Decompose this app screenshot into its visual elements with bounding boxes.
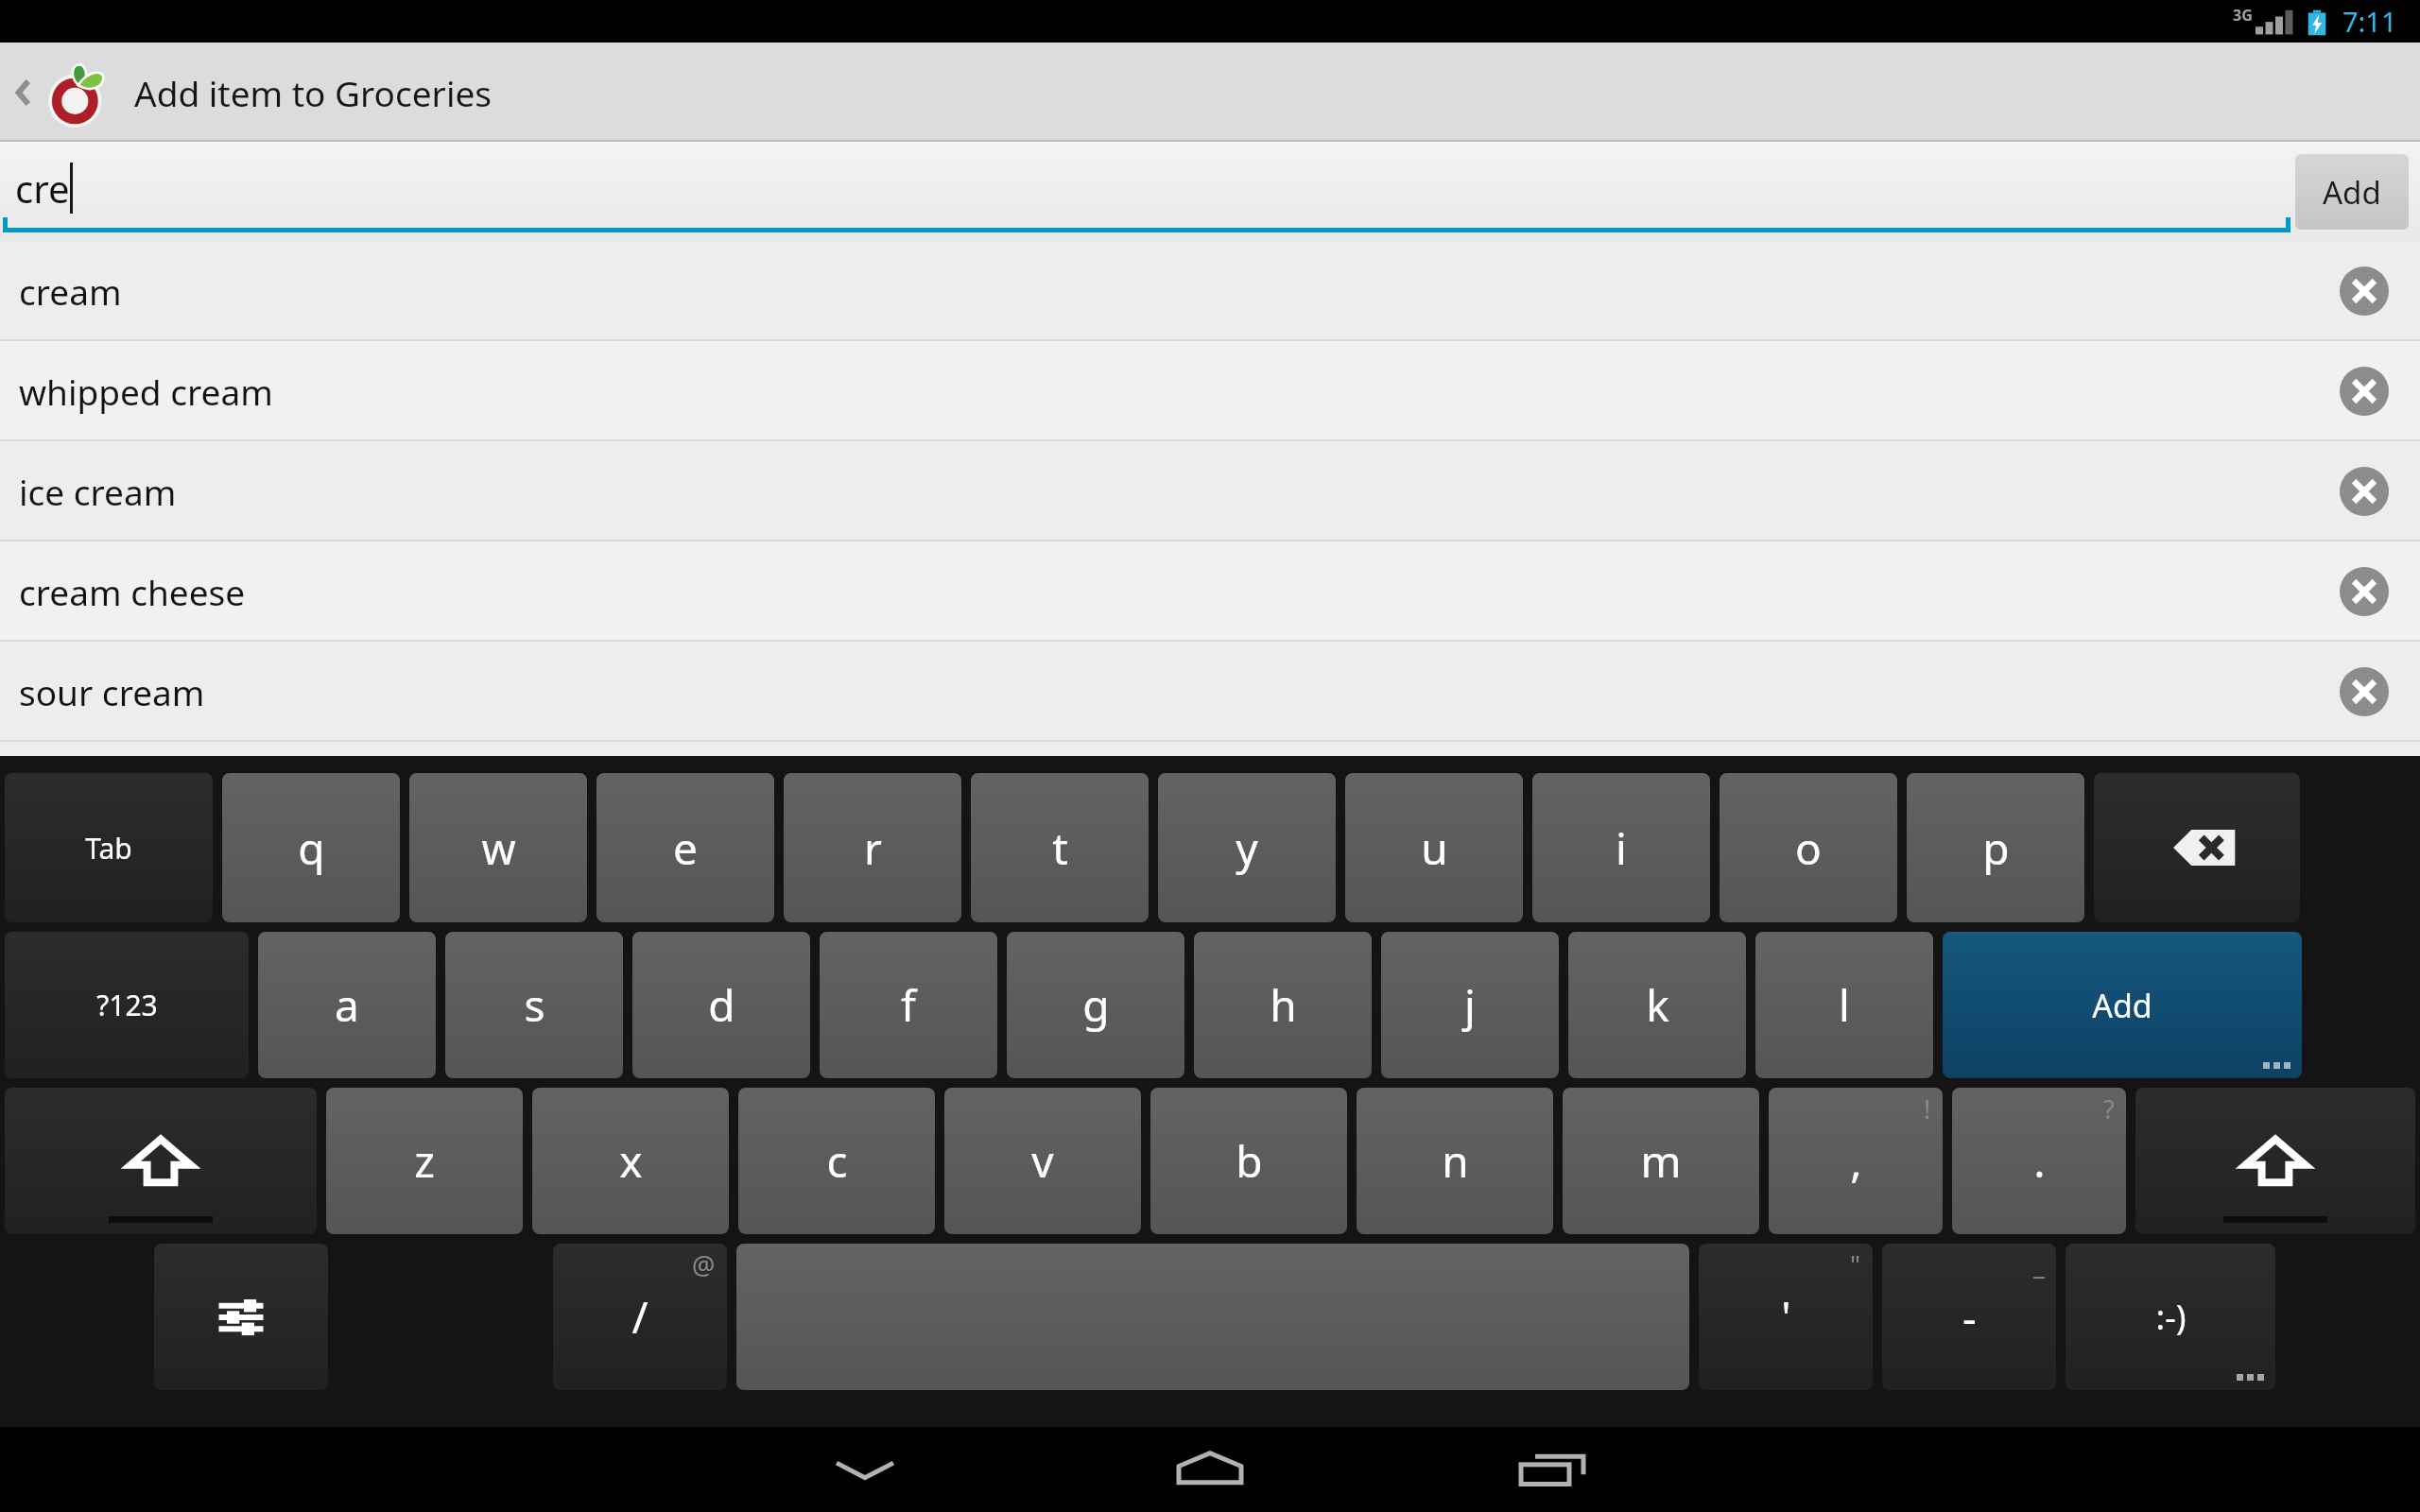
staticText: x <box>619 1131 643 1191</box>
staticText: u <box>1421 818 1448 878</box>
button[interactable]: ice cream <box>0 441 2420 541</box>
button[interactable]: whipped cream <box>0 341 2420 441</box>
button[interactable]: Navigate up <box>0 43 2420 142</box>
staticText: f <box>901 975 916 1035</box>
button[interactable]: Space <box>736 1244 1689 1390</box>
staticText: Tab <box>85 829 132 868</box>
button[interactable]: Remove whipped cream <box>2322 349 2407 434</box>
staticText: e <box>673 818 698 878</box>
staticText: Add item to Groceries <box>134 69 493 116</box>
staticText: " <box>1850 1247 1861 1282</box>
staticText: ? <box>2103 1091 2115 1126</box>
button[interactable]: Recent apps <box>1484 1429 1626 1510</box>
button[interactable]: f <box>820 932 997 1078</box>
button[interactable]: v <box>944 1088 1141 1234</box>
staticText: k <box>1646 975 1669 1035</box>
staticText: a <box>335 975 359 1035</box>
staticText: s <box>524 975 545 1035</box>
button[interactable]: e <box>596 773 774 922</box>
button[interactable]: :-) <box>2066 1244 2275 1390</box>
button[interactable]: Add <box>1943 932 2302 1078</box>
button[interactable]: / <box>553 1244 727 1390</box>
staticText: 3G <box>2233 5 2253 26</box>
staticText: d <box>708 975 735 1035</box>
staticText: Add <box>2323 171 2381 214</box>
button[interactable]: j <box>1381 932 1559 1078</box>
button[interactable]: Remove cream cheese <box>2322 549 2407 634</box>
button[interactable]: x <box>532 1088 729 1234</box>
staticText: r <box>864 818 882 878</box>
button[interactable]: sour cream <box>0 642 2420 742</box>
staticText: v <box>1031 1131 1054 1191</box>
staticText: whipped cream <box>19 368 273 415</box>
staticText: Add <box>2092 984 2152 1027</box>
button[interactable]: Home <box>1139 1429 1281 1510</box>
button[interactable]: k <box>1568 932 1746 1078</box>
button[interactable]: g <box>1007 932 1184 1078</box>
button[interactable]: a <box>258 932 436 1078</box>
button[interactable]: Add <box>2295 154 2409 230</box>
button[interactable]: Hide keyboard <box>794 1429 936 1510</box>
button[interactable]: Shift <box>2135 1088 2415 1234</box>
staticText: y <box>1236 818 1258 878</box>
staticText: c <box>826 1131 848 1191</box>
button[interactable]: cre <box>0 142 2295 241</box>
button[interactable]: Remove ice cream <box>2322 449 2407 534</box>
button[interactable]: t <box>971 773 1149 922</box>
staticText: cre <box>15 163 70 214</box>
staticText: :-) <box>2155 1294 2187 1340</box>
staticText: cream <box>19 267 122 315</box>
button[interactable]: s <box>445 932 623 1078</box>
button[interactable]: , <box>1769 1088 1943 1234</box>
staticText: - <box>1962 1287 1977 1347</box>
button[interactable]: ' <box>1699 1244 1873 1390</box>
button[interactable]: b <box>1150 1088 1347 1234</box>
button[interactable]: l <box>1755 932 1933 1078</box>
staticText: p <box>1982 818 2010 878</box>
staticText: l <box>1839 975 1850 1035</box>
button[interactable]: i <box>1532 773 1710 922</box>
staticText: ?123 <box>96 986 158 1024</box>
button[interactable]: cream <box>0 241 2420 341</box>
button[interactable]: q <box>222 773 400 922</box>
button[interactable]: p <box>1907 773 2084 922</box>
button[interactable]: m <box>1563 1088 1759 1234</box>
button[interactable]: - <box>1882 1244 2056 1390</box>
button[interactable]: y <box>1158 773 1336 922</box>
button[interactable]: Backspace <box>2094 773 2300 922</box>
staticText: t <box>1052 818 1068 878</box>
button[interactable]: Tab <box>5 773 213 922</box>
button[interactable]: o <box>1720 773 1897 922</box>
staticText: _ <box>2033 1247 2045 1282</box>
button[interactable]: c <box>738 1088 935 1234</box>
button[interactable]: d <box>632 932 810 1078</box>
staticText: i <box>1616 818 1627 878</box>
staticText: ice cream <box>19 468 177 515</box>
staticText: 7:11 <box>2342 3 2397 40</box>
button[interactable]: Remove cream <box>2322 249 2407 334</box>
button[interactable]: . <box>1952 1088 2126 1234</box>
staticText: g <box>1082 975 1110 1035</box>
staticText: w <box>481 818 516 878</box>
button[interactable]: z <box>326 1088 523 1234</box>
staticText: sour cream <box>19 668 205 715</box>
staticText: z <box>414 1131 435 1191</box>
button[interactable]: Remove sour cream <box>2322 649 2407 734</box>
button[interactable]: r <box>784 773 961 922</box>
staticText: h <box>1270 975 1297 1035</box>
staticText: j <box>1464 975 1476 1035</box>
button[interactable]: h <box>1194 932 1372 1078</box>
button[interactable]: Input method settings <box>154 1244 328 1390</box>
button[interactable]: w <box>409 773 587 922</box>
button[interactable]: cream cheese <box>0 541 2420 642</box>
button[interactable]: u <box>1345 773 1523 922</box>
staticText: , <box>1850 1131 1862 1191</box>
staticText: q <box>298 818 325 878</box>
staticText: m <box>1640 1131 1682 1191</box>
button[interactable]: n <box>1357 1088 1553 1234</box>
staticText: b <box>1236 1131 1263 1191</box>
button[interactable]: Shift <box>5 1088 317 1234</box>
button[interactable]: ?123 <box>5 932 249 1078</box>
staticText: ! <box>1924 1091 1931 1126</box>
other: Navigate up <box>8 64 40 121</box>
